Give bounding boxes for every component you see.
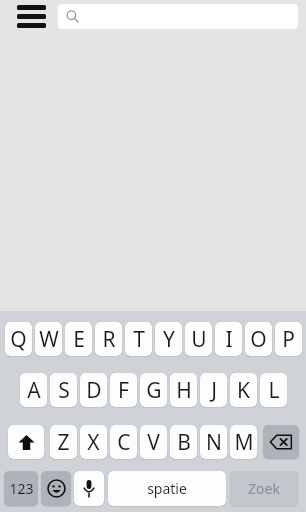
staticText: B [177,428,191,457]
button[interactable]: X [80,425,107,459]
staticText: U [191,325,207,354]
button[interactable]: L [260,373,287,407]
staticText: A [27,376,41,405]
staticText: F [118,376,129,405]
staticText: spatie [147,479,187,498]
staticText: D [86,376,102,405]
staticText: Q [10,325,27,354]
staticText: W [39,325,59,354]
button[interactable]: Emoji [41,471,71,506]
button[interactable]: Shift [8,425,44,459]
staticText: O [250,325,267,354]
staticText: H [176,376,192,405]
staticText: Zoek [248,479,280,498]
button[interactable]: D [80,373,107,407]
button[interactable]: B [170,425,197,459]
button[interactable]: Backspace [263,425,299,459]
button[interactable]: T [125,322,152,356]
button[interactable]: O [245,322,272,356]
staticText: G [146,376,162,405]
staticText: N [206,428,222,457]
button[interactable]: U [185,322,212,356]
button[interactable]: F [110,373,137,407]
button[interactable]: J [200,373,227,407]
staticText: C [117,428,131,457]
button[interactable]: Voice input [74,471,104,506]
staticText: 123 [9,479,34,498]
button[interactable]: spatie [108,471,226,506]
button[interactable]: G [140,373,167,407]
button[interactable]: 123 [4,471,38,506]
button[interactable]: W [35,322,62,356]
staticText: R [102,325,116,354]
staticText: X [87,428,100,457]
staticText: K [237,376,250,405]
button[interactable]: Menu [12,0,50,32]
button[interactable]: Z [50,425,77,459]
button[interactable]: N [200,425,227,459]
button[interactable]: M [230,425,257,459]
button[interactable] [58,4,298,29]
staticText: I [225,325,233,354]
button[interactable]: R [95,322,122,356]
button[interactable]: I [215,322,242,356]
staticText: V [147,428,160,457]
staticText: L [268,376,280,405]
staticText: Z [57,428,70,457]
staticText: S [58,376,70,405]
button[interactable]: V [140,425,167,459]
button[interactable]: A [20,373,47,407]
button[interactable]: Q [5,322,32,356]
button[interactable]: Y [155,322,182,356]
button[interactable]: E [65,322,92,356]
button[interactable]: Zoek [230,471,298,506]
staticText: T [133,325,145,354]
button[interactable]: S [50,373,77,407]
button[interactable]: C [110,425,137,459]
staticText: E [73,325,85,354]
staticText: P [282,325,295,354]
staticText: Y [163,325,175,354]
staticText: M [234,428,254,457]
button[interactable]: H [170,373,197,407]
staticText: J [211,376,217,405]
button[interactable]: K [230,373,257,407]
button[interactable]: P [275,322,302,356]
